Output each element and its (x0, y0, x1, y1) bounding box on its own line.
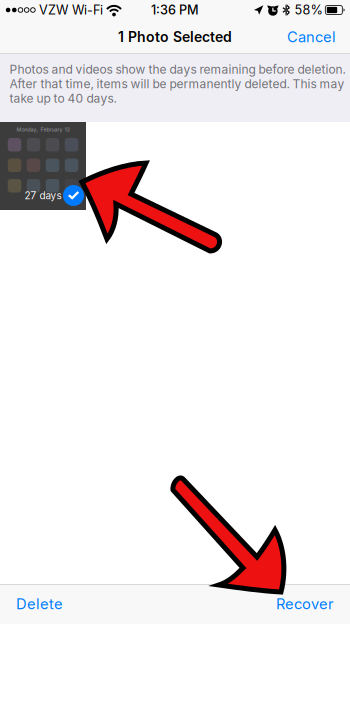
staticText: Monday, February 13 (16, 126, 69, 133)
button[interactable]: Cancel (287, 20, 350, 54)
staticText: 58% (294, 2, 322, 18)
staticText: 27 days (24, 189, 61, 202)
staticText: 1 Photo Selected (118, 28, 232, 45)
staticText: VZW Wi-Fi (39, 2, 103, 18)
staticText: 1:36 PM (151, 2, 199, 18)
staticText: Cancel (287, 28, 336, 46)
button[interactable]: Delete (0, 584, 63, 624)
staticText: Recover (276, 595, 334, 613)
staticText: Photos and videos show the days remainin… (9, 62, 345, 106)
button[interactable]: Recover (276, 584, 350, 624)
button[interactable]: Monday, February 13 (0, 122, 86, 210)
staticText: Delete (16, 595, 63, 613)
